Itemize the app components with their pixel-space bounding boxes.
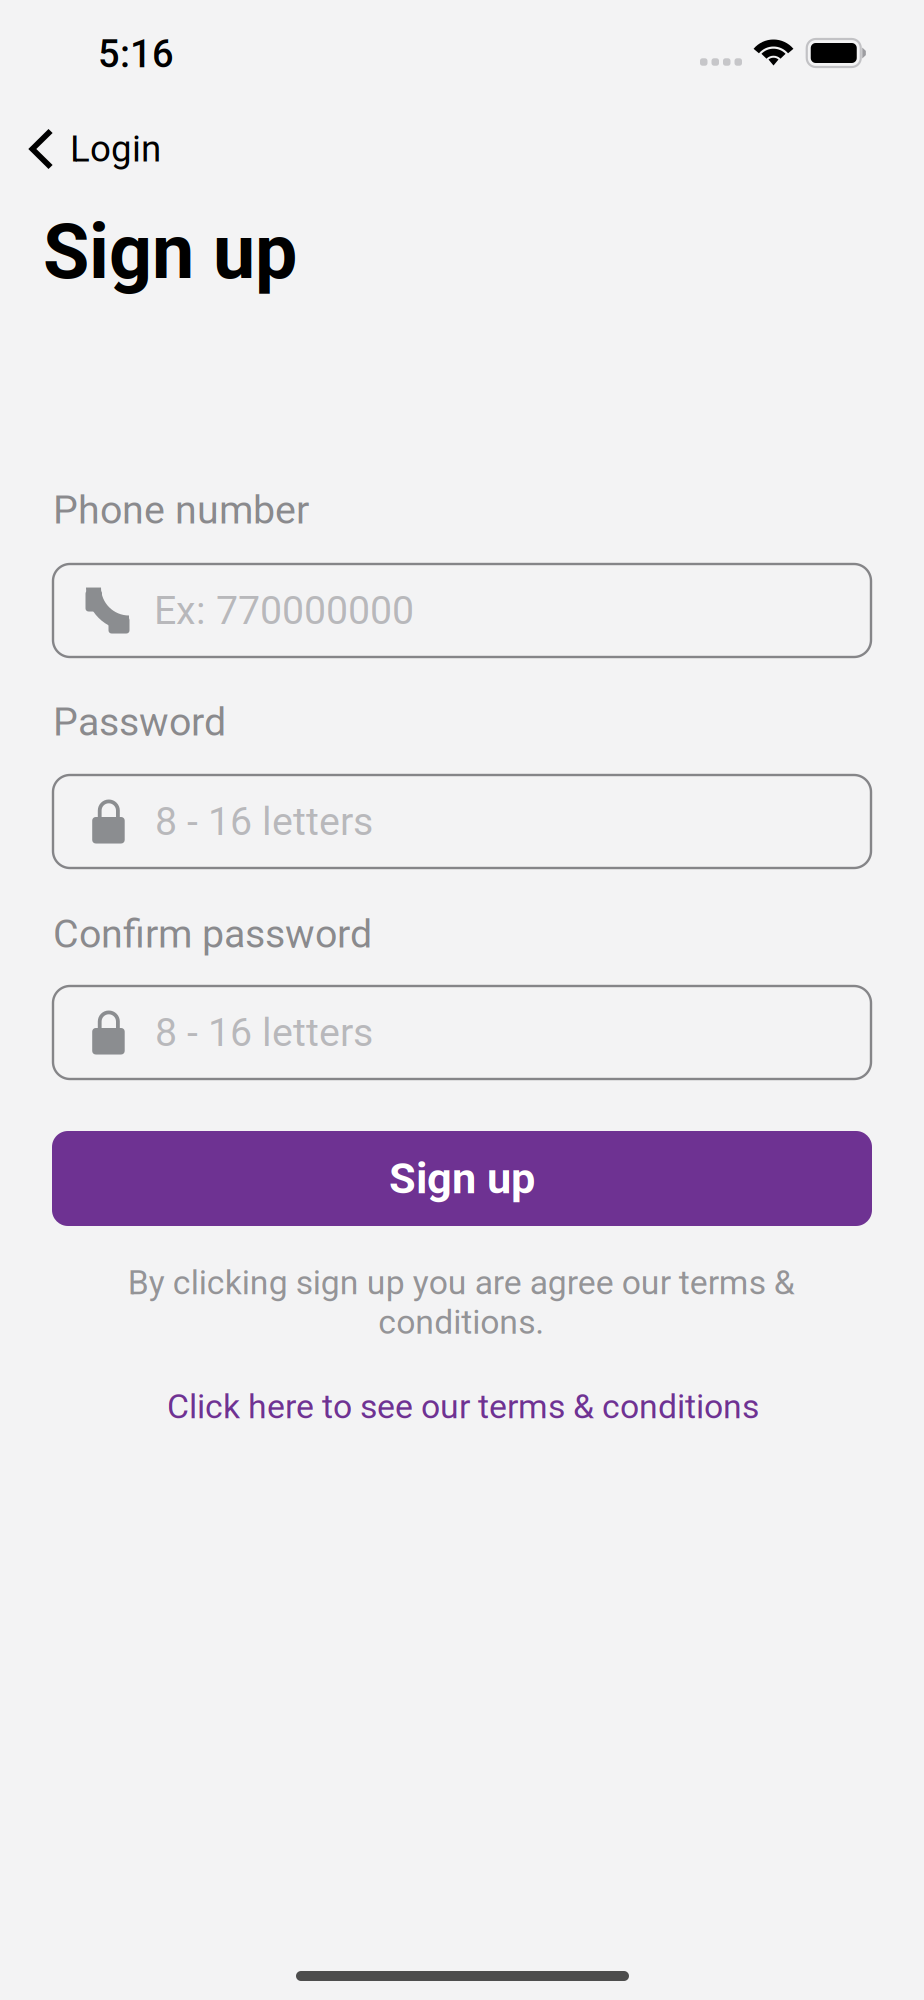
- staticText: Confirm password: [53, 911, 372, 957]
- button[interactable]: Login: [0, 116, 185, 182]
- staticText: Password: [53, 699, 226, 745]
- staticText: Sign up: [389, 1153, 535, 1204]
- staticText: Ex: 770000000: [154, 587, 414, 634]
- button[interactable]: Sign up: [52, 1131, 872, 1226]
- staticText: Sign up: [43, 208, 297, 296]
- staticText: Phone number: [53, 487, 309, 533]
- staticText: 8 - 16 letters: [155, 798, 373, 845]
- staticText: Login: [70, 127, 161, 170]
- staticText: By clicking sign up you are agree our te…: [127, 1263, 794, 1342]
- button[interactable]: Click here to see our terms & conditions: [155, 1377, 771, 1436]
- staticText: 8 - 16 letters: [155, 1009, 373, 1056]
- staticText: 5:16: [98, 32, 174, 76]
- staticText: Click here to see our terms & conditions: [167, 1387, 759, 1426]
